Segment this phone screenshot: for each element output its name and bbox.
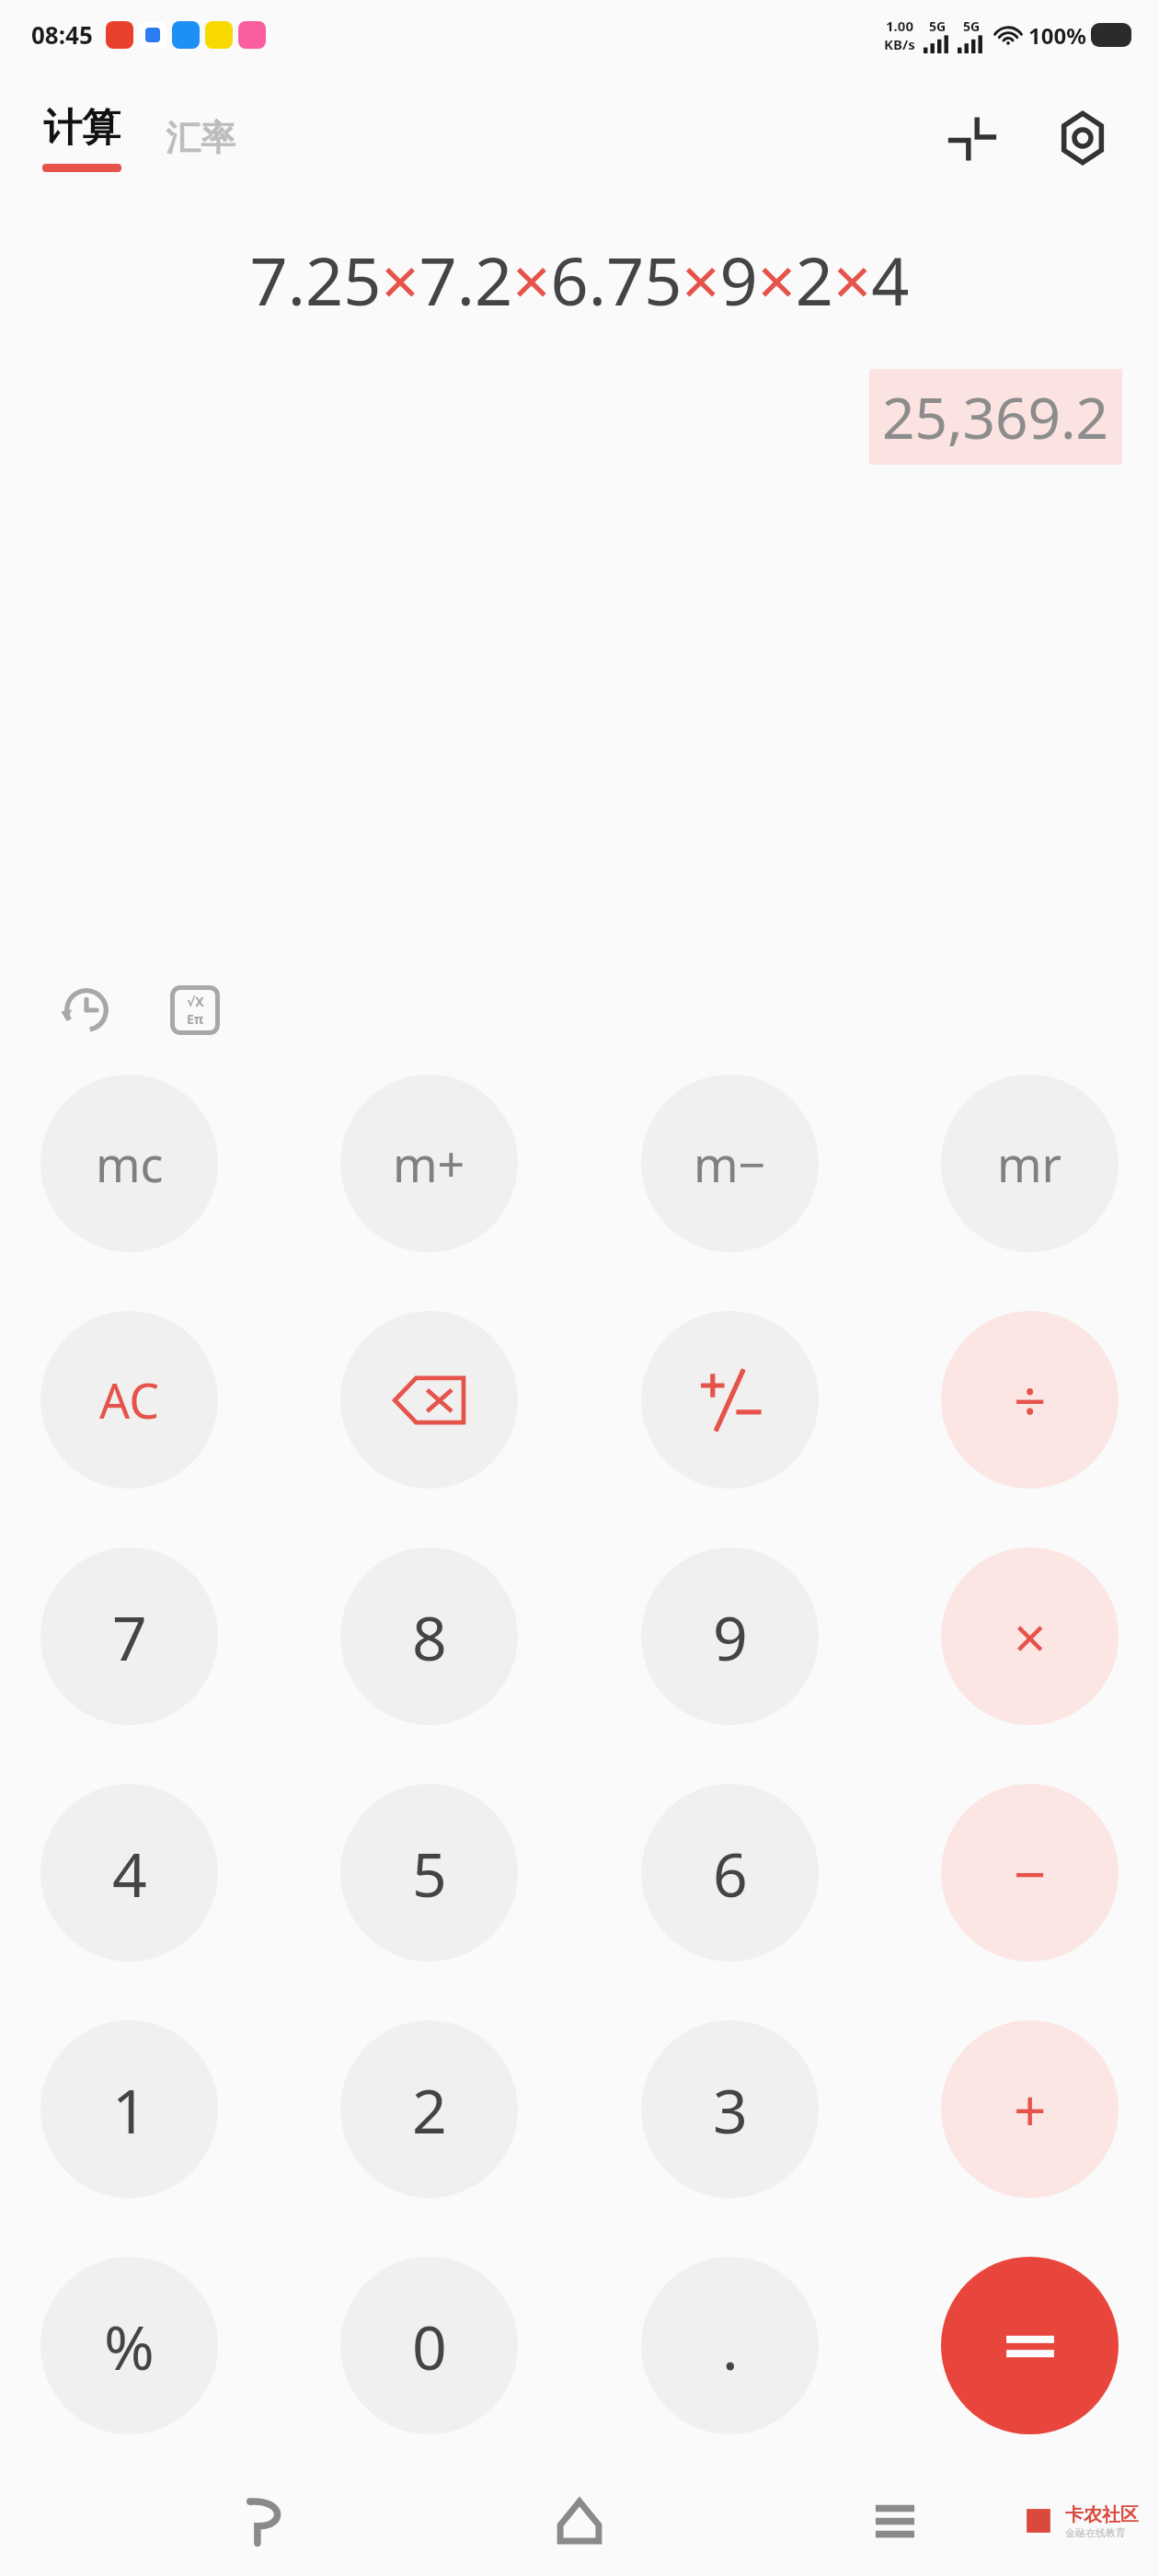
button[interactable]: . — [641, 2257, 819, 2434]
button[interactable]: History — [48, 972, 125, 1049]
staticText: m− — [694, 1131, 766, 1196]
button[interactable]: Home — [529, 2470, 630, 2571]
button[interactable]: Scientific mode — [156, 972, 234, 1049]
button[interactable]: 8 — [340, 1547, 518, 1725]
staticText: 25,369.2 — [882, 378, 1109, 455]
staticText: AC — [99, 1367, 160, 1432]
button[interactable]: 1 — [40, 2020, 218, 2198]
staticText: 5 — [412, 1832, 447, 1915]
staticText: 0 — [412, 2305, 447, 2387]
staticText: 计算 — [43, 104, 120, 153]
staticText: 5G — [963, 17, 981, 35]
button[interactable]: 9 — [641, 1547, 819, 1725]
button[interactable]: Recent apps — [844, 2470, 946, 2571]
staticText: 3 — [713, 2068, 748, 2151]
staticText: Eπ — [187, 1010, 204, 1028]
staticText: ÷ — [1014, 1362, 1047, 1439]
staticText: % — [104, 2305, 155, 2387]
button[interactable]: mr — [941, 1075, 1119, 1252]
staticText: 7.25×7.2×6.75×9×2×4 — [37, 235, 1122, 325]
button[interactable]: m− — [641, 1075, 819, 1252]
staticText: m+ — [393, 1131, 465, 1196]
button[interactable]: Backspace — [340, 1311, 518, 1489]
staticText: . — [722, 2305, 739, 2387]
button[interactable] — [941, 2257, 1119, 2434]
staticText: KB/s — [884, 35, 915, 53]
button[interactable]: + — [941, 2020, 1119, 2198]
button[interactable]: 汇率 — [160, 107, 241, 169]
button[interactable]: 计算 — [37, 104, 127, 172]
button[interactable]: m+ — [340, 1075, 518, 1252]
button[interactable]: Back — [214, 2470, 316, 2571]
staticText: 6 — [713, 1832, 748, 1915]
staticText: 1.00 — [886, 17, 913, 35]
staticText: 7 — [112, 1595, 147, 1678]
staticText: 5G — [929, 17, 947, 35]
button[interactable]: 6 — [641, 1784, 819, 1961]
button[interactable]: 5 — [340, 1784, 518, 1961]
staticText: × — [1014, 1598, 1047, 1675]
button[interactable]: Plus minus — [641, 1311, 819, 1489]
staticText: 1 — [112, 2068, 147, 2151]
staticText: 9 — [713, 1595, 748, 1678]
staticText: mc — [96, 1131, 164, 1196]
staticText: 汇率 — [166, 116, 235, 160]
staticText: − — [1014, 1834, 1047, 1912]
button[interactable]: × — [941, 1547, 1119, 1725]
staticText: 08:45 — [31, 18, 93, 51]
button[interactable]: AC — [40, 1311, 218, 1489]
staticText: mr — [997, 1131, 1062, 1196]
button[interactable]: 4 — [40, 1784, 218, 1961]
staticText: 100% — [1028, 20, 1086, 51]
button[interactable]: − — [941, 1784, 1119, 1961]
staticText: √X — [187, 993, 204, 1010]
staticText: 2 — [412, 2068, 447, 2151]
button[interactable]: 0 — [340, 2257, 518, 2434]
staticText: 金融在线教育 — [1065, 2526, 1126, 2539]
button[interactable]: 3 — [641, 2020, 819, 2198]
button[interactable]: Resize window — [933, 98, 1012, 178]
button[interactable]: Settings — [1043, 98, 1122, 178]
staticText: + — [1014, 2071, 1047, 2148]
button[interactable]: 2 — [340, 2020, 518, 2198]
button[interactable]: 7 — [40, 1547, 218, 1725]
button[interactable]: 25,369.2 — [882, 378, 1109, 455]
button[interactable]: % — [40, 2257, 218, 2434]
staticText: 卡农社区 — [1065, 2503, 1139, 2526]
button[interactable]: ÷ — [941, 1311, 1119, 1489]
staticText: 8 — [412, 1595, 447, 1678]
staticText: 4 — [112, 1832, 147, 1915]
button[interactable]: mc — [40, 1075, 218, 1252]
